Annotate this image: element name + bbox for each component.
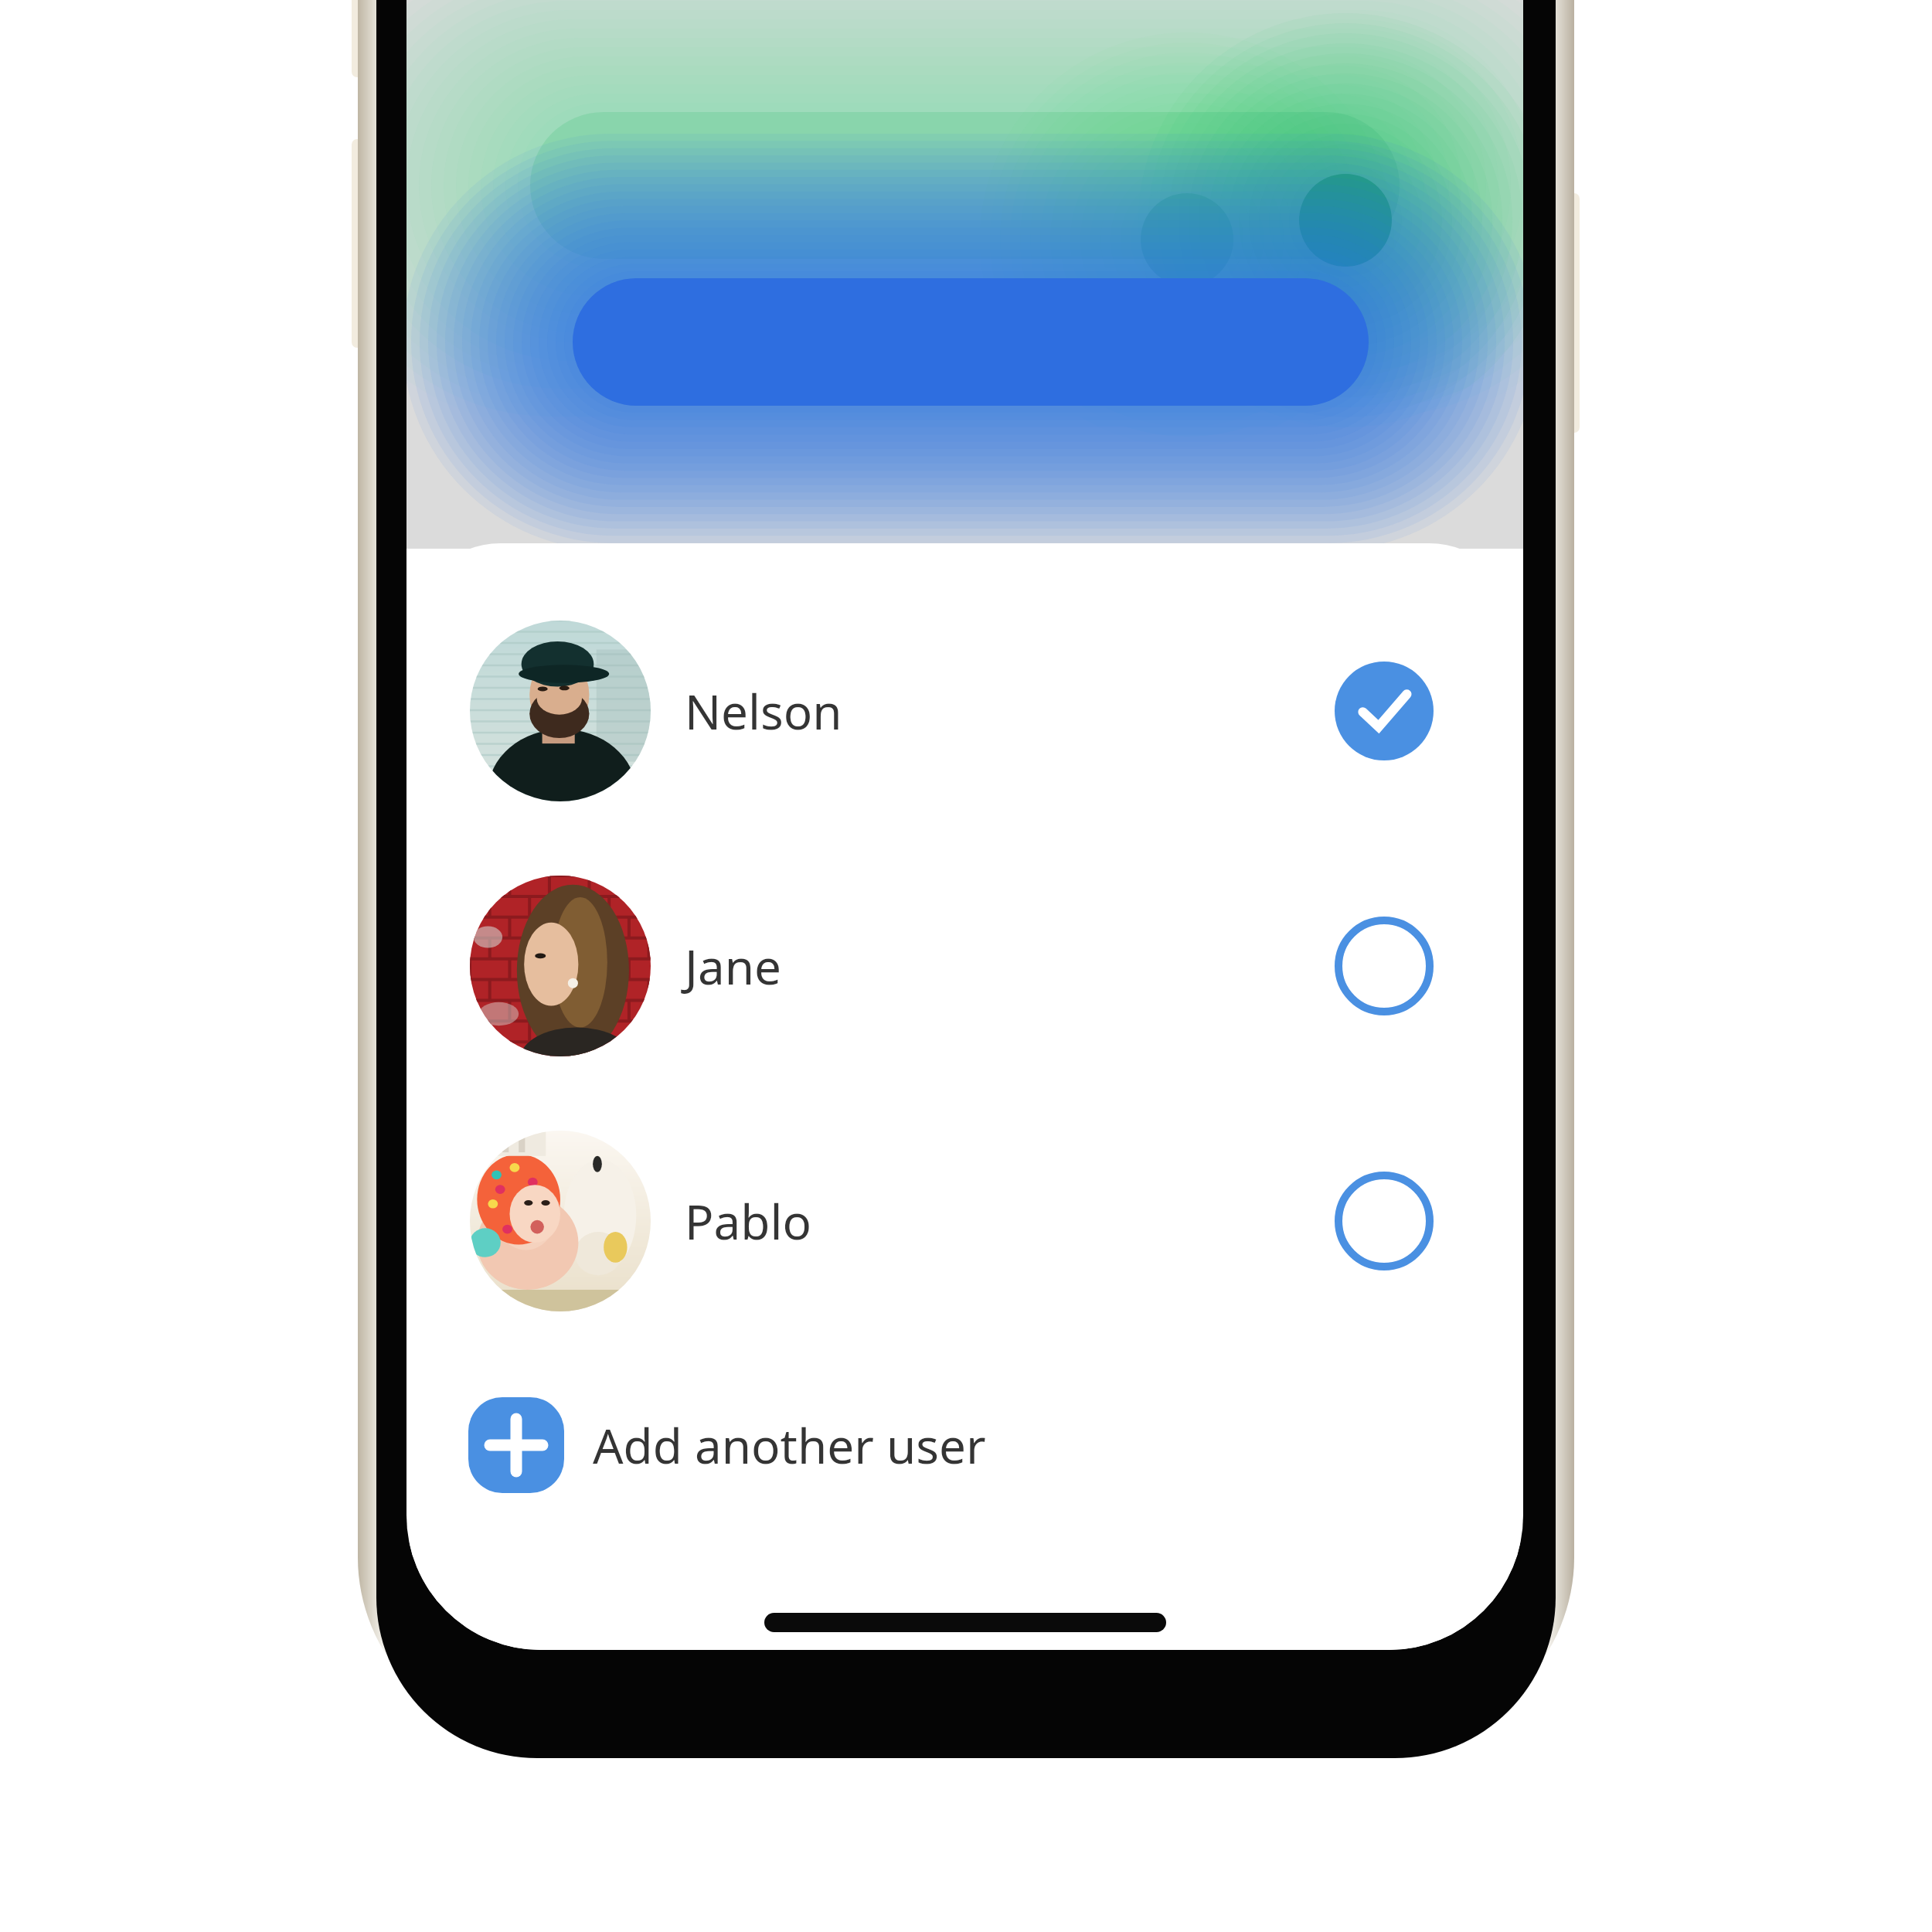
staticText: Jane: [685, 934, 781, 998]
button[interactable]: Pablo: [410, 1094, 1520, 1349]
button[interactable]: Nelson: [410, 583, 1520, 838]
staticText: Nelson: [685, 679, 842, 743]
button[interactable]: Add another user: [410, 1349, 1520, 1542]
button[interactable]: Select user: [1333, 915, 1435, 1017]
staticText: Pablo: [685, 1189, 811, 1253]
staticText: Add another user: [593, 1413, 986, 1478]
button[interactable]: Selected user: [1333, 660, 1435, 762]
button[interactable]: Jane: [410, 838, 1520, 1094]
button[interactable]: Select user: [1333, 1170, 1435, 1272]
